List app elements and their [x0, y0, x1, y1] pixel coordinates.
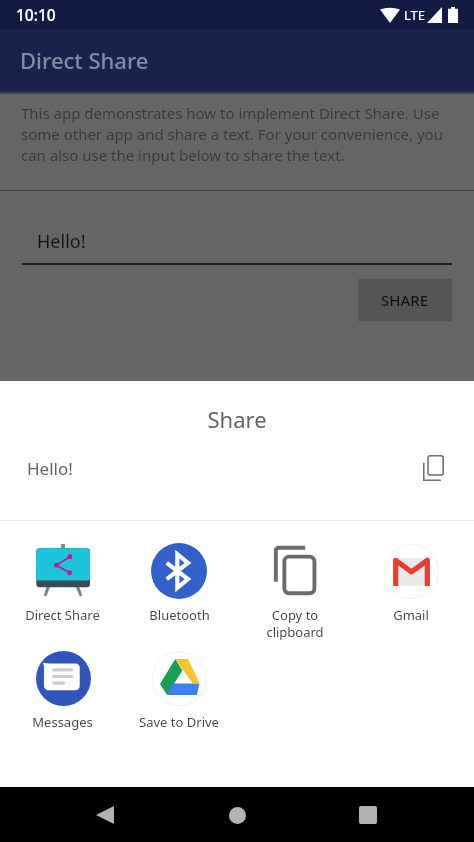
button[interactable]: Bluetooth	[121, 535, 237, 624]
button[interactable]: Home	[216, 794, 258, 836]
staticText: Gmail	[393, 606, 429, 624]
button[interactable]: Gmail	[353, 535, 469, 624]
staticText: Messages	[32, 713, 93, 731]
staticText: Hello!	[37, 229, 86, 254]
button[interactable]: Copy to clipboard	[237, 535, 353, 641]
staticText: Hello!	[27, 457, 73, 480]
button[interactable]: Direct Share	[4, 535, 121, 624]
staticText: Bluetooth	[149, 606, 210, 624]
staticText: Save to Drive	[139, 713, 219, 731]
staticText: Direct Share	[20, 45, 149, 75]
button[interactable]: Recent apps	[347, 794, 389, 836]
staticText: Share	[0, 404, 474, 434]
button[interactable]: Messages	[4, 642, 121, 731]
staticText: 10:10	[16, 4, 56, 25]
button[interactable]: Back	[84, 794, 126, 836]
staticText: SHARE	[381, 290, 429, 310]
staticText: Direct Share	[25, 606, 100, 624]
button[interactable]: Copy to clipboard	[413, 448, 453, 488]
staticText: This app demonstrates how to implement D…	[21, 103, 453, 166]
button[interactable]: Save to Drive	[121, 642, 237, 731]
button[interactable]: SHARE	[358, 279, 452, 321]
staticText: LTE	[404, 6, 426, 24]
staticText: Copy to clipboard	[266, 606, 324, 641]
